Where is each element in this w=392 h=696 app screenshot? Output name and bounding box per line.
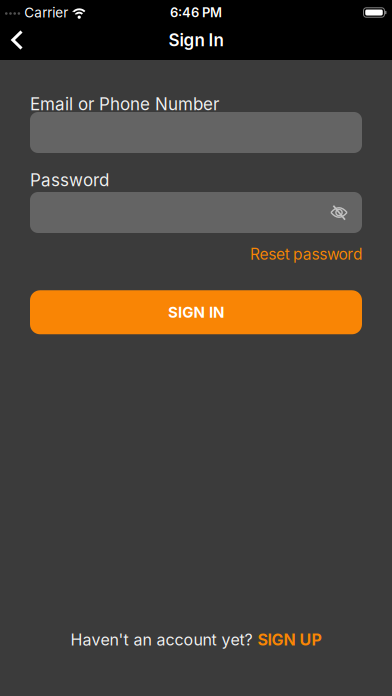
staticText: Password	[30, 170, 109, 190]
secureTextField[interactable]	[30, 202, 362, 223]
button[interactable]: Reset password	[250, 245, 362, 263]
button[interactable]: SIGN IN	[30, 290, 362, 334]
staticText: Carrier	[24, 4, 68, 20]
staticText: SIGN IN	[168, 303, 224, 321]
button[interactable]: Show password	[330, 192, 362, 232]
staticText: Reset password	[250, 245, 362, 263]
staticText: Sign In	[168, 30, 223, 50]
button[interactable]: Back	[0, 25, 33, 59]
staticText: 6:46 PM	[170, 5, 222, 20]
staticText: Email or Phone Number	[30, 94, 219, 114]
staticText: SIGN UP	[257, 630, 321, 649]
button[interactable]: SIGN UP	[257, 630, 321, 649]
staticText: Haven't an account yet?	[70, 630, 257, 649]
